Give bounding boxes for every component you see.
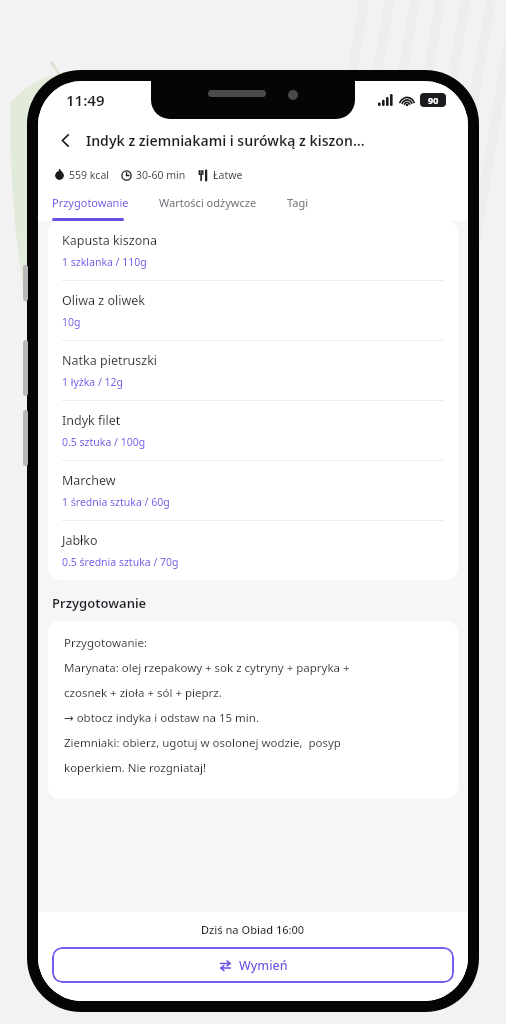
staticText: koperkiem. Nie rozgniataj! <box>64 760 207 776</box>
button[interactable]: Wartości odżywcze <box>159 195 257 210</box>
staticText: Tagi <box>287 195 309 210</box>
staticText: 11:49 <box>66 90 105 110</box>
staticText: Natka pietruszki <box>62 352 158 369</box>
staticText: 0.5 średnia sztuka / 70g <box>62 555 179 569</box>
staticText: 0.5 sztuka / 100g <box>62 435 146 449</box>
staticText: 10g <box>62 315 81 329</box>
button[interactable]: Back <box>50 125 80 155</box>
button[interactable]: Kapusta kiszona <box>62 221 444 280</box>
staticText: 1 średnia sztuka / 60g <box>62 495 170 509</box>
button[interactable]: Jabłko <box>62 521 444 580</box>
staticText: Kapusta kiszona <box>62 232 157 249</box>
staticText: Jabłko <box>62 532 98 549</box>
staticText: Wymień <box>239 957 288 974</box>
button[interactable]: Marchew <box>62 461 444 520</box>
staticText: Indyk z ziemniakami i surówką z kiszon… <box>86 131 365 150</box>
button[interactable]: Oliwa z oliwek <box>62 281 444 340</box>
staticText: Przygotowanie <box>52 195 129 210</box>
button[interactable]: Tagi <box>287 195 309 210</box>
staticText: Przygotowanie: <box>64 635 148 651</box>
staticText: → obtocz indyka i odstaw na 15 min. <box>64 710 260 726</box>
staticText: Marynata: olej rzepakowy + sok z cytryny… <box>64 660 350 676</box>
button[interactable]: Przygotowanie <box>52 195 129 210</box>
staticText: 1 łyżka / 12g <box>62 375 124 389</box>
staticText: 559 kcal <box>69 168 109 182</box>
staticText: Ziemniaki: obierz, ugotuj w osolonej wod… <box>64 735 341 751</box>
staticText: Marchew <box>62 472 116 489</box>
staticText: Dziś na Obiad 16:00 <box>201 922 305 937</box>
staticText: Łatwe <box>213 168 243 182</box>
staticText: Przygotowanie <box>52 594 147 612</box>
button[interactable]: Indyk filet <box>62 401 444 460</box>
staticText: Indyk filet <box>62 412 121 429</box>
staticText: 30-60 min <box>136 168 186 182</box>
staticText: 90 <box>428 94 439 106</box>
staticText: 1 szklanka / 110g <box>62 255 147 269</box>
staticText: czosnek + zioła + sól + pieprz. <box>64 685 222 701</box>
staticText: Oliwa z oliwek <box>62 292 145 309</box>
staticText: Wartości odżywcze <box>159 195 257 210</box>
button[interactable]: Natka pietruszki <box>62 341 444 400</box>
button[interactable]: Wymień <box>52 947 454 983</box>
